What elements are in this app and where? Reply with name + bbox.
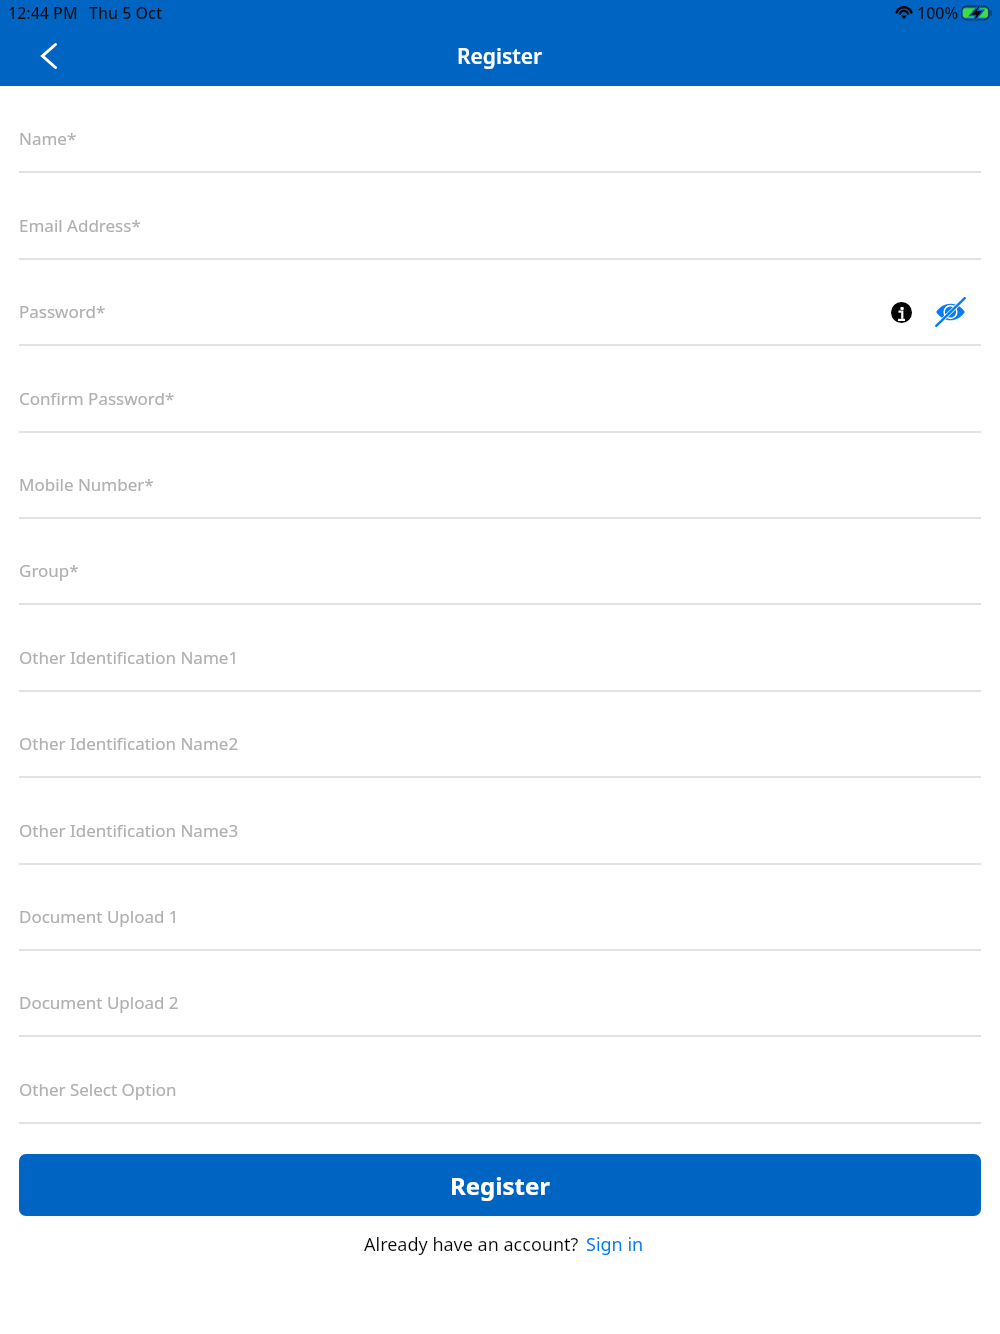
button[interactable]: Other Identification Name1: [0, 605, 1000, 691]
button[interactable]: Mobile Number*: [0, 432, 1000, 518]
button[interactable]: Password*: [0, 259, 1000, 345]
staticText: Group*: [19, 559, 79, 582]
staticText: Other Select Option: [19, 1078, 177, 1101]
staticText: Mobile Number*: [19, 473, 154, 496]
button[interactable]: Document Upload 2: [0, 950, 1000, 1036]
staticText: Other Identification Name2: [19, 732, 239, 755]
staticText: Document Upload 1: [19, 905, 179, 928]
button[interactable]: Name*: [0, 86, 1000, 172]
staticText: 12:44 PM: [8, 2, 78, 24]
staticText: Other Identification Name1: [19, 646, 239, 669]
button[interactable]: Other Identification Name3: [0, 778, 1000, 864]
staticText: Register: [457, 42, 543, 71]
button[interactable]: Register: [19, 1154, 981, 1216]
staticText: Register: [450, 1169, 550, 1202]
staticText: Password*: [19, 300, 106, 323]
staticText: Sign in: [586, 1232, 644, 1257]
staticText: Name*: [19, 127, 77, 150]
button[interactable]: Show password: [930, 292, 970, 332]
staticText: Document Upload 2: [19, 991, 179, 1014]
button[interactable]: Other Identification Name2: [0, 691, 1000, 777]
staticText: Confirm Password*: [19, 387, 175, 410]
staticText: Thu 5 Oct: [89, 2, 163, 24]
button[interactable]: Sign in: [586, 1232, 644, 1257]
button[interactable]: Password information: [882, 293, 920, 331]
button[interactable]: Document Upload 1: [0, 864, 1000, 950]
staticText: Other Identification Name3: [19, 819, 239, 842]
button[interactable]: Other Select Option: [0, 1037, 1000, 1123]
button[interactable]: Back: [21, 30, 78, 86]
staticText: Email Address*: [19, 214, 141, 237]
staticText: Already have an account?: [364, 1232, 579, 1257]
button[interactable]: Confirm Password*: [0, 346, 1000, 432]
staticText: 100%: [917, 2, 959, 24]
button[interactable]: Group*: [0, 518, 1000, 604]
button[interactable]: Email Address*: [0, 173, 1000, 259]
